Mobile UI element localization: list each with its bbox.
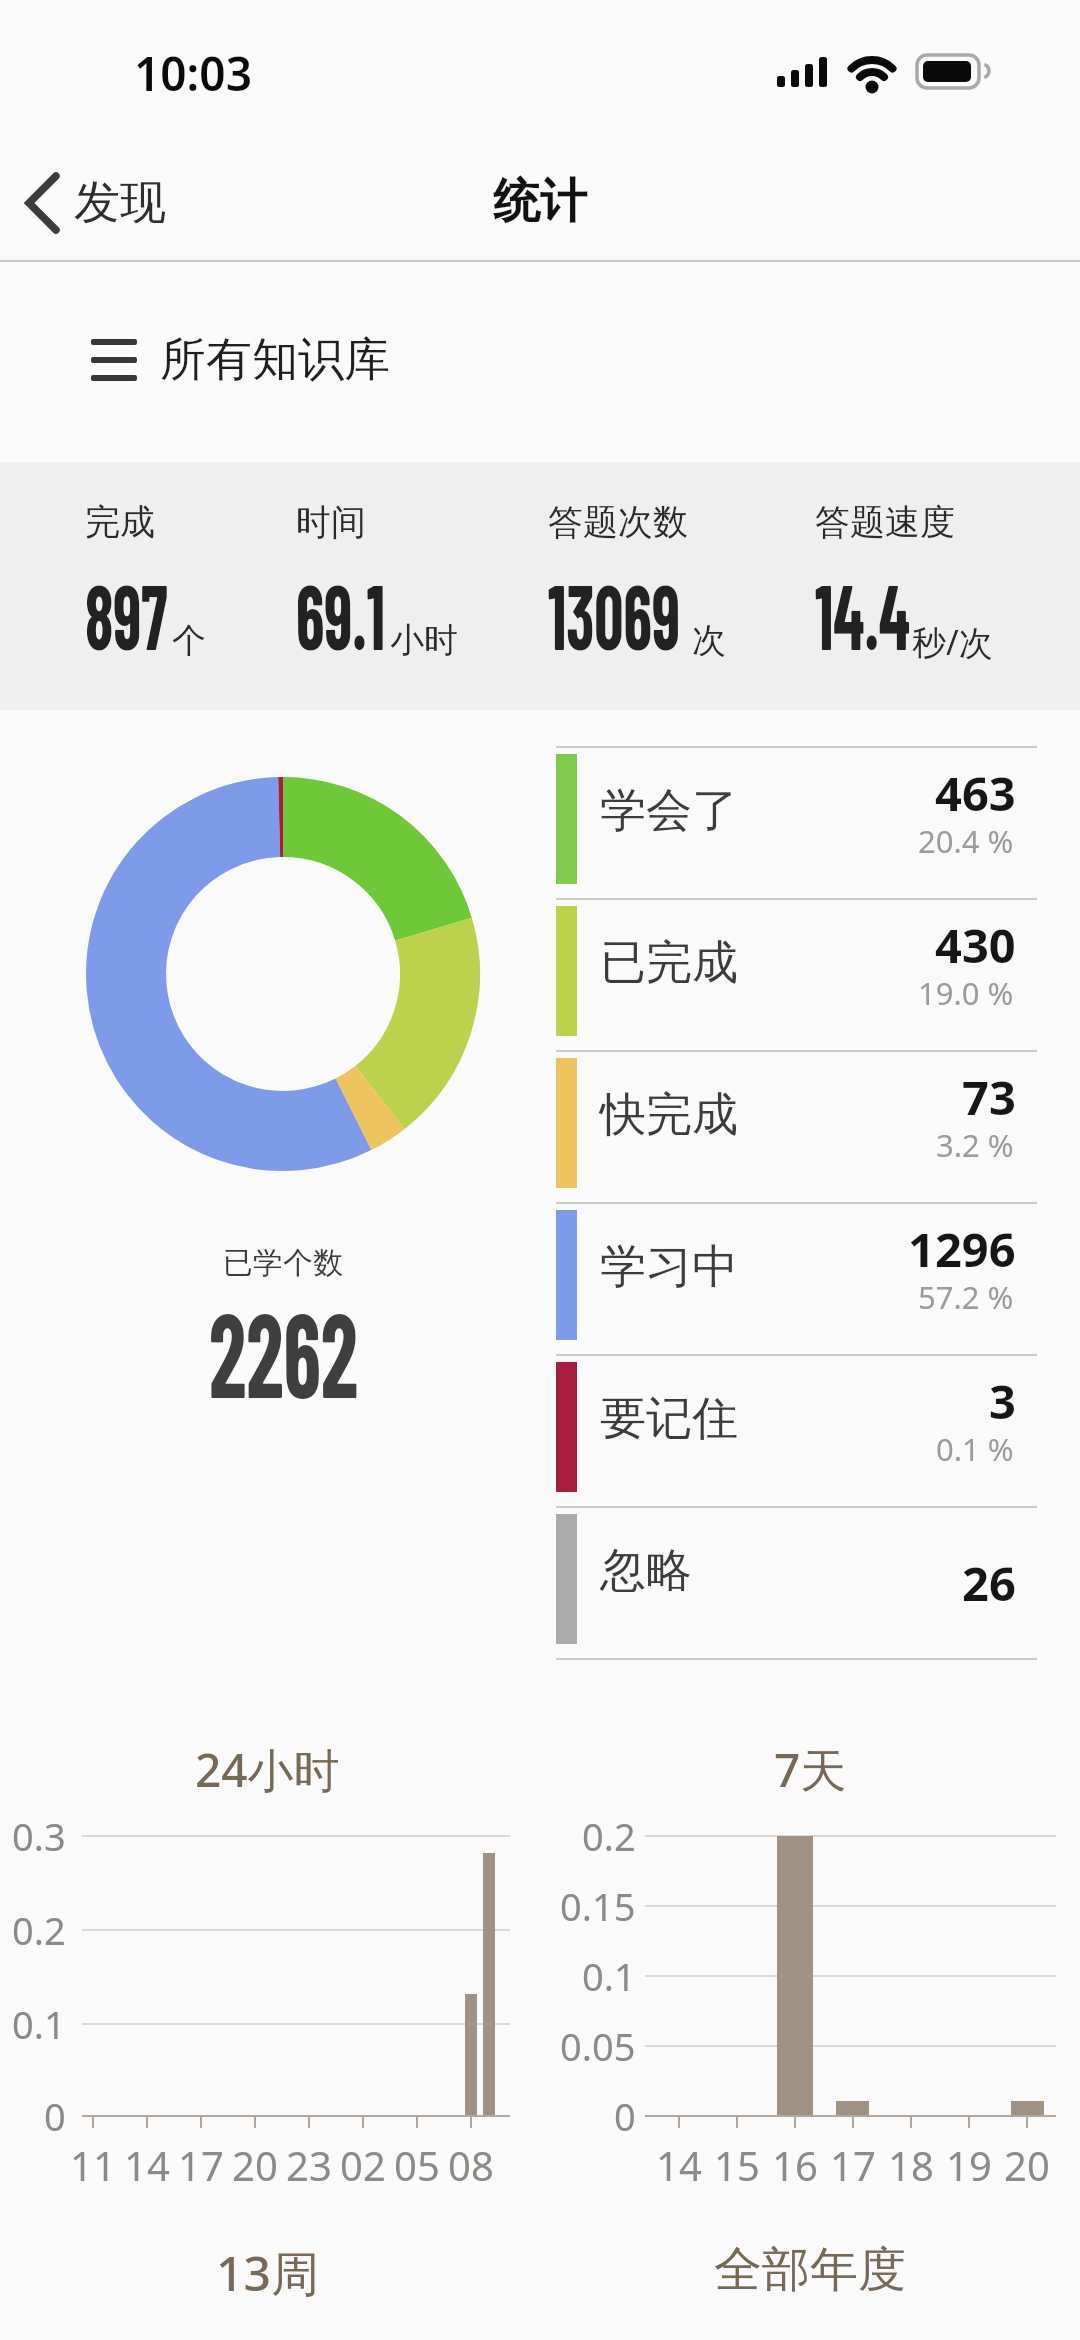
staticText: 11 <box>70 2138 116 2192</box>
staticText: 0.3 <box>12 1810 66 1862</box>
staticText: 答题次数 <box>548 500 688 544</box>
staticText: 发现 <box>74 174 166 232</box>
staticText: 秒/次 <box>912 619 993 665</box>
staticText: 14.4 <box>815 558 910 668</box>
staticText: 19 <box>946 2138 992 2192</box>
staticText: 430 <box>935 913 1016 977</box>
staticText: 20 <box>232 2138 278 2192</box>
staticText: 19.0 % <box>918 972 1014 1014</box>
staticText: 学习中 <box>600 1238 738 1296</box>
staticText: 所有知识库 <box>160 331 390 389</box>
staticText: 14 <box>656 2138 702 2192</box>
staticText: 23 <box>286 2138 332 2192</box>
staticText: 1296 <box>908 1217 1016 1281</box>
staticText: 18 <box>888 2138 934 2192</box>
staticText: 个 <box>172 619 206 662</box>
staticText: 统计 <box>493 172 587 231</box>
staticText: 17 <box>830 2138 876 2192</box>
button[interactable]: 忽略 <box>556 1508 1037 1658</box>
staticText: 忽略 <box>600 1542 692 1600</box>
button[interactable]: 要记住 <box>556 1356 1037 1506</box>
staticText: 0.2 <box>12 1904 66 1956</box>
staticText: 20 <box>1004 2138 1050 2192</box>
staticText: 7天 <box>774 1738 847 1801</box>
staticText: 0.05 <box>560 2020 636 2072</box>
staticText: 0.1 <box>12 1998 66 2050</box>
staticText: 73 <box>962 1065 1016 1129</box>
staticText: 15 <box>714 2138 760 2192</box>
button[interactable]: 发现 <box>0 160 166 246</box>
staticText: 已学个数 <box>223 1244 343 1282</box>
button[interactable]: 已完成 <box>556 900 1037 1050</box>
staticText: 57.2 % <box>918 1276 1014 1318</box>
staticText: 26 <box>962 1551 1016 1615</box>
staticText: 全部年度 <box>714 2240 906 2300</box>
staticText: 0.15 <box>560 1880 636 1932</box>
staticText: 463 <box>935 761 1016 825</box>
button[interactable]: 学会了 <box>556 748 1037 898</box>
staticText: 16 <box>772 2138 818 2192</box>
staticText: 897 <box>85 558 168 668</box>
staticText: 已完成 <box>600 934 738 992</box>
staticText: 学会了 <box>600 782 738 840</box>
staticText: 2262 <box>209 1280 358 1422</box>
staticText: 0 <box>614 2090 636 2142</box>
staticText: 答题速度 <box>815 500 955 544</box>
staticText: 14 <box>124 2138 170 2192</box>
staticText: 3 <box>989 1369 1016 1433</box>
staticText: 3.2 % <box>936 1124 1014 1166</box>
staticText: 13069 <box>548 558 680 668</box>
staticText: 时间 <box>296 500 366 544</box>
staticText: 要记住 <box>600 1390 738 1448</box>
staticText: 快完成 <box>600 1086 738 1144</box>
staticText: 20.4 % <box>918 820 1014 862</box>
staticText: 24小时 <box>195 1738 340 1801</box>
button[interactable]: 学习中 <box>556 1204 1037 1354</box>
staticText: 0.1 <box>582 1950 636 2002</box>
staticText: 17 <box>178 2138 224 2192</box>
button[interactable]: 所有知识库 <box>70 320 390 400</box>
staticText: 次 <box>692 619 726 662</box>
staticText: 69.1 <box>296 558 386 668</box>
staticText: 10:03 <box>134 42 252 105</box>
staticText: 02 <box>340 2138 386 2192</box>
staticText: 0.2 <box>582 1810 636 1862</box>
staticText: 13周 <box>216 2240 319 2306</box>
staticText: 0 <box>44 2090 66 2142</box>
staticText: 完成 <box>85 500 155 544</box>
staticText: 05 <box>394 2138 440 2192</box>
button[interactable]: 快完成 <box>556 1052 1037 1202</box>
staticText: 小时 <box>390 619 458 662</box>
staticText: 0.1 % <box>936 1428 1014 1470</box>
staticText: 08 <box>448 2138 494 2192</box>
